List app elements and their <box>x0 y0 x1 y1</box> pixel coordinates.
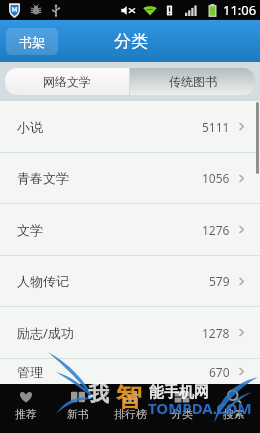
staticText: 11:06 <box>223 1 257 19</box>
staticText: 分类 <box>114 31 148 52</box>
staticText: 青春文学 <box>17 170 69 186</box>
staticText: 智 <box>116 381 142 414</box>
button[interactable]: 排行榜 <box>104 384 156 433</box>
button[interactable]: 推荐 <box>0 384 52 433</box>
button[interactable]: 传统图书 <box>130 68 255 95</box>
button[interactable]: 分类 <box>156 384 208 433</box>
staticText: 分类 <box>171 407 193 421</box>
staticText: 670 <box>209 364 230 380</box>
button[interactable]: 文学 <box>0 204 260 255</box>
button[interactable]: 书架 <box>6 28 58 55</box>
staticText: 新书 <box>67 407 89 421</box>
staticText: 管理 <box>17 364 43 380</box>
staticText: 励志/成功 <box>17 324 74 342</box>
staticText: 5111 <box>202 119 230 135</box>
button[interactable]: 人物传记 <box>0 256 260 306</box>
staticText: 能手机网 <box>149 383 209 402</box>
staticText: 排行榜 <box>114 407 147 421</box>
button[interactable]: 搜索 <box>208 384 260 433</box>
staticText: TOMPDA.COM <box>148 398 252 418</box>
staticText: 1276 <box>202 222 230 238</box>
staticText: 579 <box>209 273 230 289</box>
button[interactable]: 网络文学 <box>5 68 129 95</box>
button[interactable]: 小说 <box>0 101 260 152</box>
staticText: 传统图书 <box>169 74 217 89</box>
staticText: 我 <box>88 381 109 407</box>
staticText: 人物传记 <box>17 273 69 289</box>
staticText: 书架 <box>19 34 45 50</box>
button[interactable]: 励志/成功 <box>0 307 260 358</box>
button[interactable]: 新书 <box>52 384 104 433</box>
staticText: 1278 <box>202 325 230 341</box>
staticText: 小说 <box>17 119 43 135</box>
staticText: 文学 <box>17 222 43 238</box>
staticText: 推荐 <box>15 407 37 421</box>
staticText: 1056 <box>202 170 230 186</box>
staticText: 网络文学 <box>43 74 91 89</box>
staticText: 搜索 <box>223 407 245 421</box>
button[interactable]: 管理 <box>0 359 260 384</box>
button[interactable]: 青春文学 <box>0 153 260 203</box>
